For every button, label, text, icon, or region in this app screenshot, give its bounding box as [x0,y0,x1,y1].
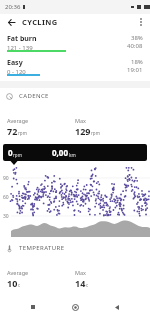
staticText: Average [7,117,29,124]
staticText: Easy [7,58,23,68]
staticText: 18% [131,58,143,66]
staticText: 38% [131,34,143,42]
staticText: CYCLING [22,17,58,27]
staticText: rpm [91,130,100,136]
staticText: c [86,282,89,288]
staticText: km [69,152,76,158]
button[interactable]: More options [132,14,150,30]
staticText: 72 [7,125,18,137]
button[interactable]: Recent apps [24,298,42,316]
staticText: rpm [18,130,27,136]
staticText: c [18,282,21,288]
button[interactable]: Easy [0,58,150,80]
staticText: Average [7,269,29,276]
staticText: rpm [13,152,22,158]
staticText: 14 [75,277,86,289]
button[interactable]: Back [108,298,126,316]
staticText: 10 [7,277,18,289]
staticText: 60 [3,194,9,201]
staticText: 0 - 120 [7,68,26,76]
staticText: 121 - 139 [7,44,33,52]
button[interactable]: Fat burn [0,34,150,56]
staticText: 90 [3,175,9,182]
staticText: 129 [75,125,91,137]
staticText: Fat burn [7,34,37,44]
staticText: 0,00 [52,147,69,158]
staticText: 30 [3,213,9,220]
staticText: Max [75,117,86,124]
button[interactable]: Home [66,298,84,316]
staticText: 0 [8,147,13,158]
staticText: CADENCE [19,92,49,100]
staticText: TEMPERATURE [19,244,65,252]
button[interactable]: Back [0,14,22,30]
staticText: Max [75,269,86,276]
staticText: 19:01 [127,66,143,74]
staticText: 20:36 [5,3,21,11]
staticText: 40:08 [127,42,143,50]
